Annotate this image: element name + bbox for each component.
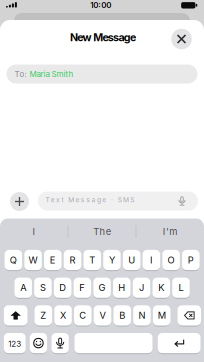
button[interactable]: Delete: [178, 305, 201, 326]
button[interactable]: N: [133, 305, 151, 326]
staticText: U: [128, 254, 135, 265]
button[interactable]: G: [93, 277, 111, 298]
staticText: L: [178, 282, 183, 293]
button[interactable]: X: [54, 305, 72, 326]
staticText: New Message: [70, 31, 136, 44]
button[interactable]: A: [14, 277, 32, 298]
staticText: V: [99, 310, 105, 321]
staticText: B: [119, 310, 125, 321]
button[interactable]: The: [72, 224, 132, 238]
button[interactable]: I'm: [140, 224, 200, 238]
button[interactable]: I: [143, 249, 160, 270]
button[interactable]: Dictate: [51, 333, 69, 354]
button[interactable]: Close: [171, 29, 192, 49]
button[interactable]: V: [94, 305, 111, 326]
button[interactable]: J: [133, 277, 150, 298]
staticText: Z: [40, 310, 46, 321]
staticText: F: [79, 282, 85, 293]
staticText: To:: [14, 69, 26, 79]
staticText: I: [32, 226, 35, 237]
staticText: I'm: [163, 226, 177, 237]
button[interactable]: U: [123, 249, 140, 270]
button[interactable]: I: [4, 224, 64, 238]
button[interactable]: H: [113, 277, 131, 298]
staticText: W: [29, 254, 38, 265]
button[interactable]: Return: [158, 333, 200, 354]
button[interactable]: Emoji: [30, 333, 47, 354]
staticText: 10:00: [90, 0, 111, 10]
staticText: D: [59, 282, 66, 293]
button[interactable]: Space: [74, 333, 152, 354]
staticText: J: [139, 282, 144, 293]
button[interactable]: K: [152, 277, 170, 298]
button[interactable]: D: [54, 277, 71, 298]
button[interactable]: B: [113, 305, 131, 326]
button[interactable]: W: [24, 249, 42, 270]
staticText: 123: [8, 339, 21, 349]
button[interactable]: L: [172, 277, 190, 298]
staticText: X: [60, 310, 66, 321]
staticText: I: [150, 254, 153, 265]
staticText: Maria Smith: [29, 69, 73, 79]
staticText: A: [20, 282, 26, 293]
button[interactable]: Numbers: [4, 333, 26, 354]
button[interactable]: P: [182, 249, 200, 270]
button[interactable]: Z: [35, 305, 52, 326]
button[interactable]: R: [64, 249, 81, 270]
staticText: Q: [10, 254, 17, 265]
button[interactable]: Shift: [4, 305, 27, 326]
staticText: O: [168, 254, 175, 265]
button[interactable]: Q: [5, 249, 22, 270]
staticText: H: [118, 282, 125, 293]
staticText: T: [89, 254, 95, 265]
button[interactable]: O: [162, 249, 180, 270]
button[interactable]: C: [74, 305, 91, 326]
staticText: N: [138, 310, 145, 321]
staticText: K: [158, 282, 164, 293]
staticText: C: [79, 310, 86, 321]
button[interactable]: E: [44, 249, 61, 270]
button[interactable]: Y: [103, 249, 121, 270]
staticText: E: [50, 254, 56, 265]
staticText: The: [93, 226, 111, 237]
button[interactable]: F: [74, 277, 91, 298]
button[interactable]: Attachments: [10, 192, 29, 211]
staticText: R: [69, 254, 75, 265]
button[interactable]: T: [83, 249, 101, 270]
button[interactable]: M: [153, 305, 170, 326]
staticText: Text Message · SMS: [45, 196, 134, 204]
staticText: Y: [109, 254, 115, 265]
staticText: M: [158, 310, 166, 321]
button[interactable]: S: [34, 277, 52, 298]
button[interactable]: To:: [6, 64, 197, 83]
button[interactable]: Text Message: [38, 191, 198, 210]
staticText: S: [40, 282, 46, 293]
staticText: P: [188, 254, 194, 265]
staticText: G: [99, 282, 106, 293]
